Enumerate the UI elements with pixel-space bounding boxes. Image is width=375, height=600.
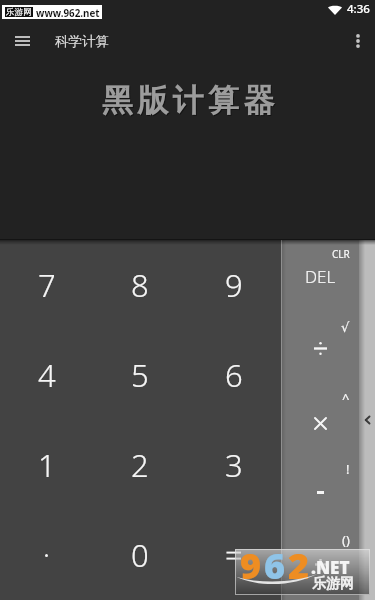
staticText: www.962.net bbox=[36, 7, 100, 20]
button[interactable] bbox=[0, 510, 93, 600]
staticText: 4:36 bbox=[347, 1, 370, 17]
button[interactable]: Expand panel bbox=[359, 404, 375, 436]
staticText: 2 bbox=[288, 541, 310, 587]
staticText: 2 bbox=[131, 444, 149, 486]
staticText: 5 bbox=[131, 354, 149, 396]
staticText: 9 bbox=[240, 541, 264, 587]
button[interactable]: CLR bbox=[281, 240, 359, 312]
staticText: 1 bbox=[38, 444, 56, 486]
staticText: 黑版计算器 bbox=[102, 81, 279, 120]
button[interactable]: = bbox=[187, 510, 281, 600]
staticText: 黑版计算器 bbox=[103, 82, 280, 121]
button[interactable]: 3 bbox=[187, 420, 281, 510]
button[interactable]: √ bbox=[281, 312, 359, 384]
button[interactable]: 2 bbox=[93, 420, 187, 510]
staticText: 9 bbox=[225, 264, 243, 306]
staticText: 6 bbox=[225, 354, 243, 396]
staticText: 6 bbox=[264, 541, 288, 587]
staticText: CLR bbox=[332, 247, 350, 261]
button[interactable]: 0 bbox=[93, 510, 187, 600]
button[interactable]: ^ bbox=[281, 384, 359, 456]
staticText: 4 bbox=[38, 354, 56, 396]
button[interactable]: 4 bbox=[0, 330, 93, 420]
button[interactable]: More options bbox=[340, 24, 375, 58]
staticText: 3 bbox=[225, 444, 243, 486]
button[interactable]: 5 bbox=[93, 330, 187, 420]
staticText: 乐游网 bbox=[312, 575, 354, 593]
staticText: 8 bbox=[131, 264, 149, 306]
staticText: .NET bbox=[311, 556, 350, 579]
staticText: = bbox=[225, 533, 243, 575]
staticText: () bbox=[342, 531, 350, 549]
staticText: DEL bbox=[305, 265, 336, 288]
staticText: ! bbox=[346, 460, 350, 478]
staticText: 乐游网 bbox=[6, 7, 32, 17]
button[interactable]: () bbox=[281, 528, 359, 600]
button[interactable]: 7 bbox=[0, 240, 93, 330]
button[interactable]: 6 bbox=[187, 330, 281, 420]
button[interactable]: 1 bbox=[0, 420, 93, 510]
staticText: √ bbox=[341, 320, 350, 335]
button[interactable]: ! bbox=[281, 456, 359, 528]
button[interactable]: Menu bbox=[0, 24, 44, 58]
staticText: 0 bbox=[131, 534, 149, 576]
button[interactable]: 9 bbox=[187, 240, 281, 330]
staticText: 7 bbox=[38, 264, 56, 306]
button[interactable]: 8 bbox=[93, 240, 187, 330]
staticText: ^ bbox=[342, 389, 350, 407]
staticText: 科学计算 bbox=[55, 33, 109, 50]
